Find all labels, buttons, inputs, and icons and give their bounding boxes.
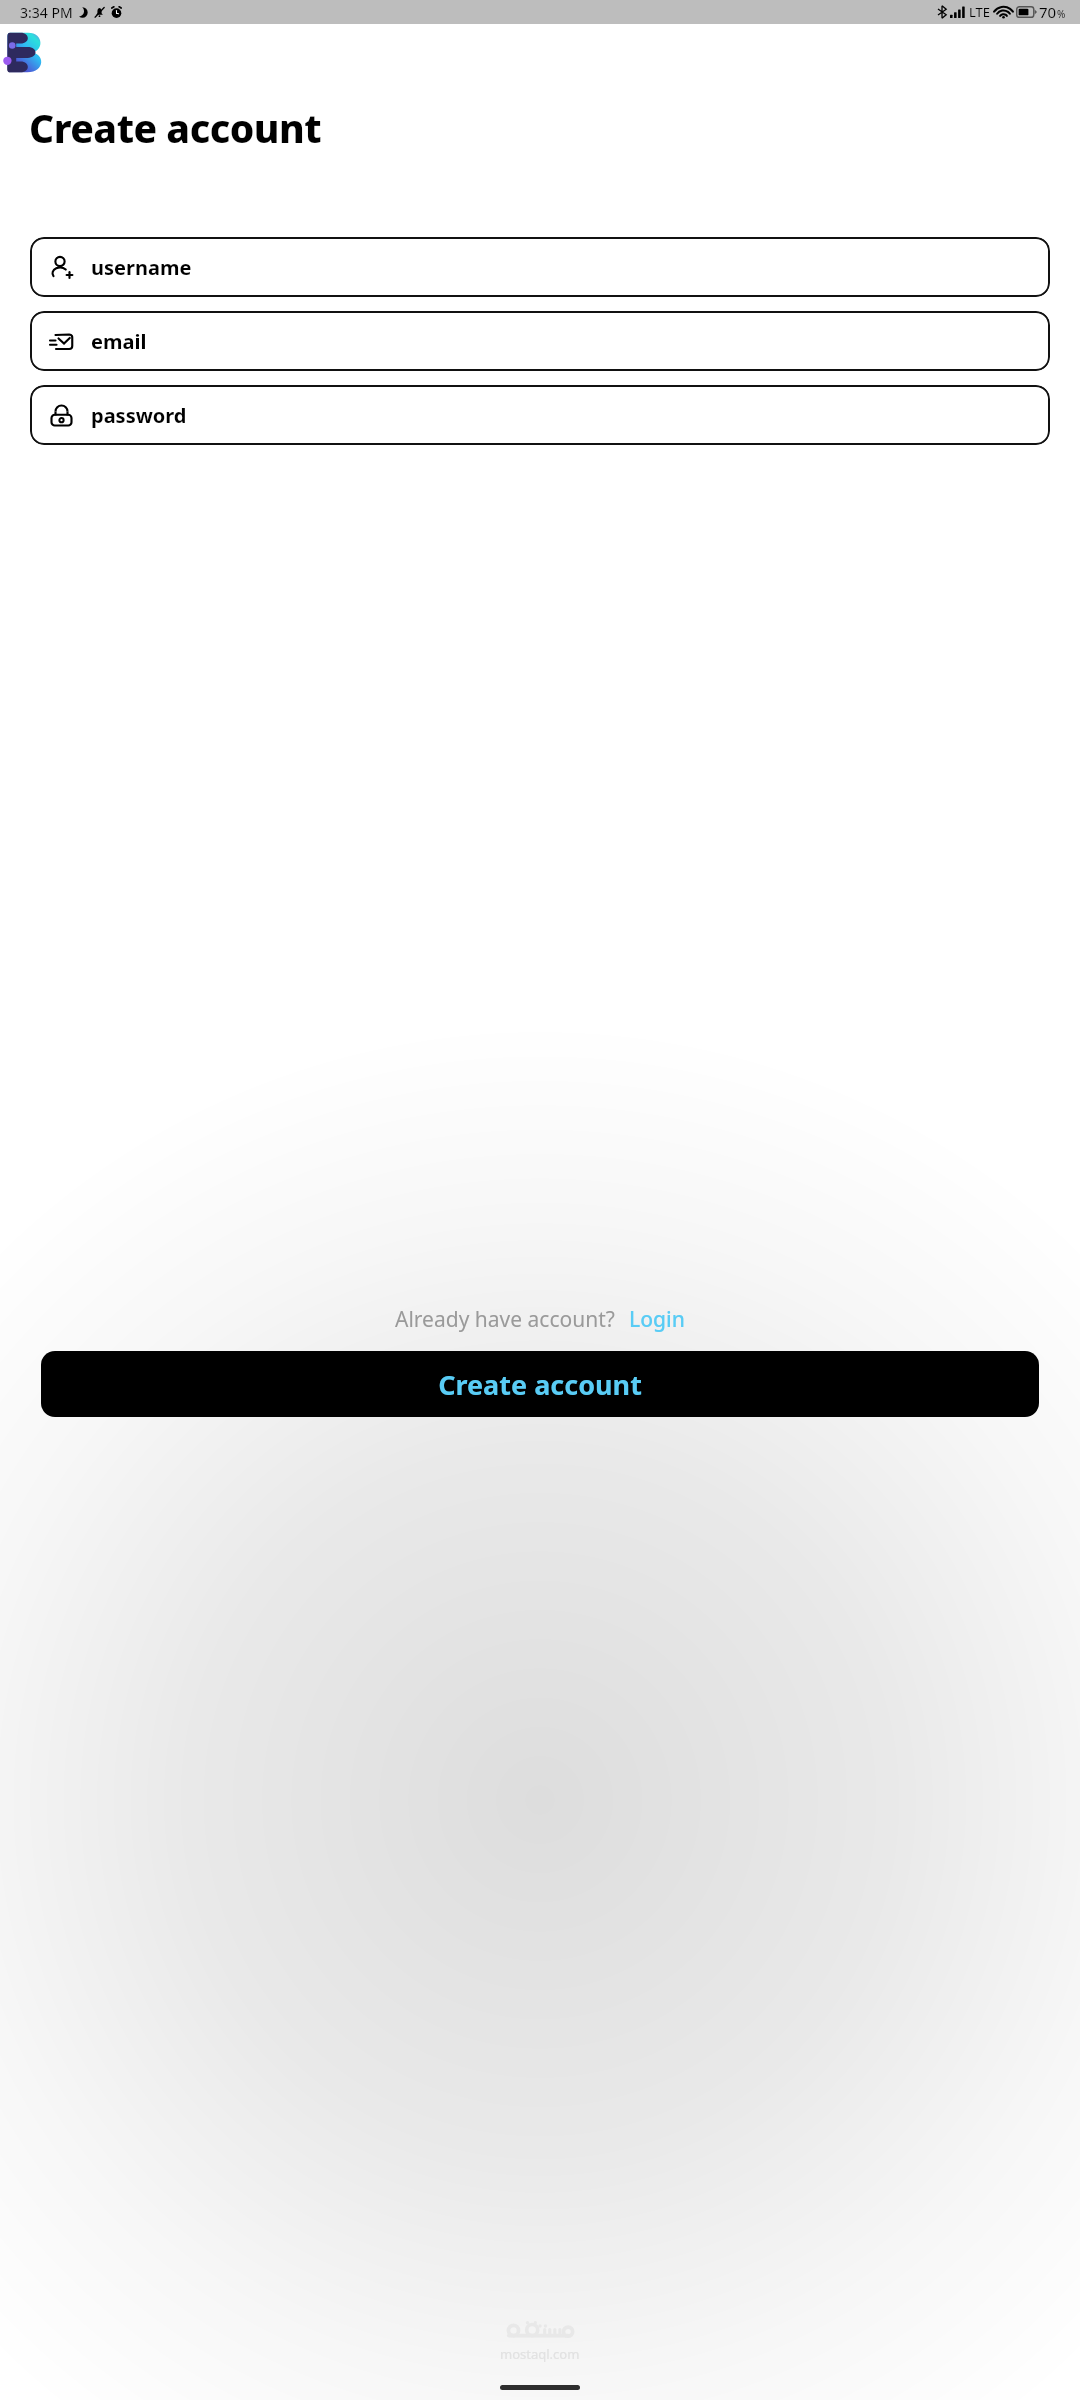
- staticText: LTE: [969, 3, 991, 21]
- staticText: Create account: [438, 1366, 642, 1403]
- staticText: Login: [629, 1305, 685, 1334]
- button[interactable]: password: [30, 385, 1050, 445]
- staticText: 70: [1039, 2, 1057, 22]
- staticText: 3:34 PM: [20, 3, 73, 22]
- staticText: %: [1057, 7, 1066, 21]
- button[interactable]: Login: [629, 1305, 685, 1334]
- button[interactable]: username: [30, 237, 1050, 297]
- staticText: username: [91, 254, 192, 281]
- button[interactable]: email: [30, 311, 1050, 371]
- staticText: email: [91, 328, 147, 355]
- other: App logo: [3, 30, 47, 75]
- staticText: password: [91, 402, 187, 429]
- staticText: Create account: [29, 101, 322, 154]
- staticText: Already have account?: [395, 1305, 615, 1334]
- staticText: mostaql.com: [500, 2345, 580, 2363]
- button[interactable]: Create account: [41, 1351, 1039, 1417]
